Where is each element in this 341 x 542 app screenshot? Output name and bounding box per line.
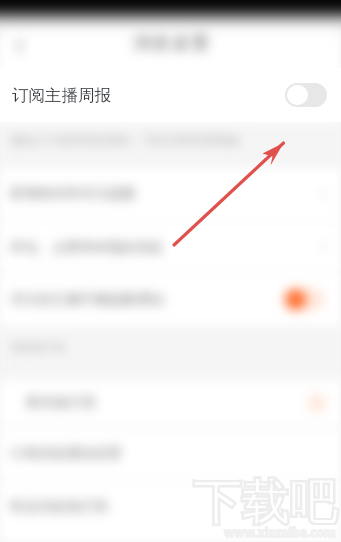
button[interactable]: 私信消息免打扰 (0, 481, 341, 533)
button[interactable]: 订阅消息通知设置 (0, 428, 341, 480)
button[interactable]: 订阅主播周报 (0, 68, 341, 122)
button[interactable] (284, 288, 324, 311)
button[interactable]: 评论、点赞和@我的消息 (0, 221, 341, 272)
button[interactable]: Back (9, 35, 31, 57)
button[interactable] (285, 83, 327, 107)
staticText: 夜间免打扰 (26, 394, 96, 412)
staticText: 订阅主播周报 (12, 85, 111, 106)
button[interactable] (307, 393, 327, 413)
button[interactable]: 夜间免打扰 (0, 380, 341, 425)
button[interactable]: 关注的主播开播提醒通知 (0, 273, 341, 326)
staticText: 新增粉丝和关注提醒 (10, 185, 136, 203)
staticText: www.xiazaiba.com (224, 524, 336, 540)
staticText: 评论、点赞和@我的消息 (10, 237, 163, 256)
button[interactable]: 新增粉丝和关注提醒 (0, 168, 341, 220)
staticText: 关注的主播开播提醒通知 (10, 291, 164, 309)
staticText: 接收以下消息的推送通知，可前往系统设置修改 (10, 133, 241, 147)
staticText: 下载吧 (193, 473, 337, 533)
staticText: 订阅消息通知设置 (10, 445, 122, 463)
staticText: 私信消息免打扰 (10, 498, 108, 516)
staticText: 消息设置 (132, 32, 210, 55)
